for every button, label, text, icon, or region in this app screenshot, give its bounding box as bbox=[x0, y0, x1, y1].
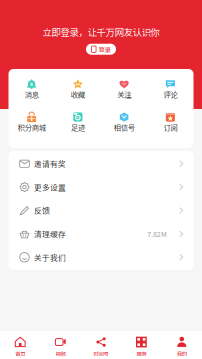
button[interactable]: 登录 bbox=[86, 44, 116, 55]
staticText: 积分商城 bbox=[18, 122, 46, 132]
staticText: 7.82M bbox=[147, 229, 167, 239]
button[interactable]: 订阅 bbox=[147, 111, 193, 132]
staticText: 视频 bbox=[56, 349, 66, 357]
button[interactable]: 清理缓存 bbox=[8, 222, 193, 246]
staticText: 收藏 bbox=[71, 89, 85, 99]
button[interactable]: 时间号 bbox=[81, 336, 121, 358]
staticText: 邀请有奖 bbox=[34, 158, 66, 169]
staticText: 相信号 bbox=[114, 122, 135, 132]
button[interactable]: 首页 bbox=[0, 336, 40, 358]
staticText: 足迹 bbox=[71, 122, 85, 132]
button[interactable]: 反馈 bbox=[8, 199, 193, 222]
button[interactable]: 更多设置 bbox=[8, 175, 193, 199]
staticText: 更多设置 bbox=[34, 181, 66, 193]
staticText: 消息 bbox=[25, 89, 39, 99]
staticText: 登录 bbox=[98, 45, 110, 54]
staticText: 关注 bbox=[117, 89, 131, 99]
button[interactable]: 邀请有奖 bbox=[8, 152, 193, 175]
button[interactable]: 消息 bbox=[8, 78, 55, 99]
button[interactable]: 我的 bbox=[162, 336, 202, 358]
staticText: 我的 bbox=[177, 349, 187, 357]
button[interactable]: 评论 bbox=[147, 78, 193, 99]
staticText: 清理缓存 bbox=[34, 228, 66, 239]
staticText: 订阅 bbox=[163, 122, 177, 132]
staticText: 反馈 bbox=[34, 205, 50, 216]
staticText: 时间号 bbox=[93, 349, 108, 357]
button[interactable]: 关注 bbox=[101, 78, 147, 99]
button[interactable]: 收藏 bbox=[55, 78, 101, 99]
staticText: 首页 bbox=[15, 349, 25, 357]
staticText: 服务 bbox=[136, 349, 146, 357]
button[interactable]: 积分商城 bbox=[8, 111, 55, 132]
staticText: 评论 bbox=[163, 89, 177, 99]
button[interactable]: 关于我们 bbox=[8, 246, 193, 269]
button[interactable]: 相信号 bbox=[101, 111, 147, 132]
button[interactable]: 服务 bbox=[121, 336, 162, 358]
staticText: 关于我们 bbox=[34, 252, 66, 263]
staticText: 立即登录，让千万网友认识你 bbox=[42, 25, 159, 39]
button[interactable]: 视频 bbox=[40, 336, 81, 358]
button[interactable]: 足迹 bbox=[55, 111, 101, 132]
